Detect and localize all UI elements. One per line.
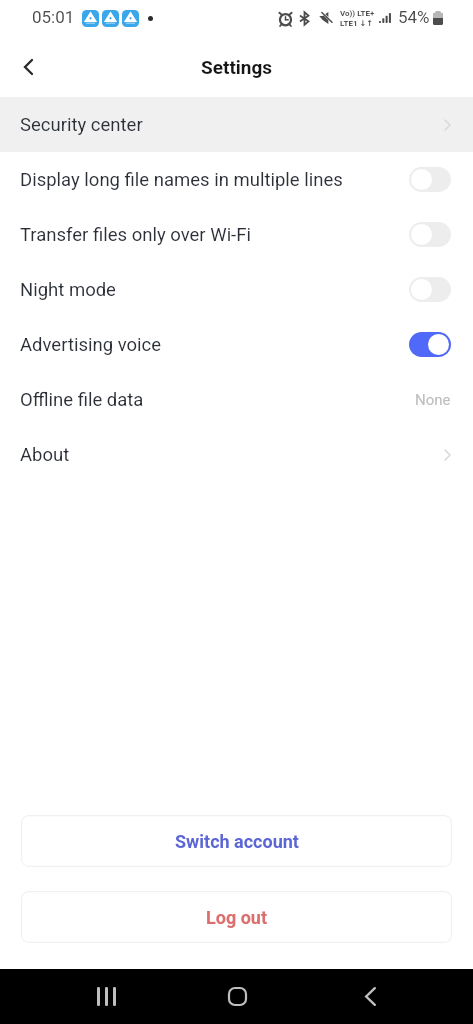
staticText: Vo)) LTE+ — [340, 9, 375, 18]
button[interactable]: Recents — [82, 973, 130, 1021]
button[interactable]: Switch account — [21, 815, 452, 867]
button[interactable]: Back — [343, 973, 391, 1021]
staticText: 05:01 — [32, 7, 75, 27]
staticText: Switch account — [175, 831, 299, 852]
staticText: Transfer files only over Wi-Fi — [20, 224, 409, 246]
button[interactable]: Night mode — [0, 262, 473, 317]
button[interactable]: Back — [6, 45, 50, 89]
button[interactable]: Off — [409, 222, 451, 247]
button[interactable]: Log out — [21, 891, 452, 943]
staticText: 54% — [398, 7, 430, 27]
button[interactable]: Advertising voice — [0, 317, 473, 372]
staticText: Night mode — [20, 279, 409, 301]
staticText: Offline file data — [20, 389, 415, 411]
button[interactable]: Offline file data — [0, 372, 473, 427]
staticText: None — [415, 391, 451, 409]
staticText: Log out — [206, 907, 267, 928]
staticText: About — [20, 444, 444, 466]
staticText: Settings — [201, 56, 273, 78]
button[interactable]: On — [409, 332, 451, 357]
staticText: Advertising voice — [20, 334, 409, 356]
button[interactable]: Transfer files only over Wi-Fi — [0, 207, 473, 262]
staticText: Display long file names in multiple line… — [20, 169, 409, 191]
button[interactable]: Off — [409, 277, 451, 302]
button[interactable]: Off — [409, 167, 451, 192]
button[interactable]: Home — [213, 973, 261, 1021]
button[interactable]: Security center — [0, 97, 473, 152]
staticText: LTE1 ↓↑ — [340, 19, 373, 28]
button[interactable]: Display long file names in multiple line… — [0, 152, 473, 207]
staticText: Security center — [20, 114, 444, 136]
button[interactable]: About — [0, 427, 473, 482]
